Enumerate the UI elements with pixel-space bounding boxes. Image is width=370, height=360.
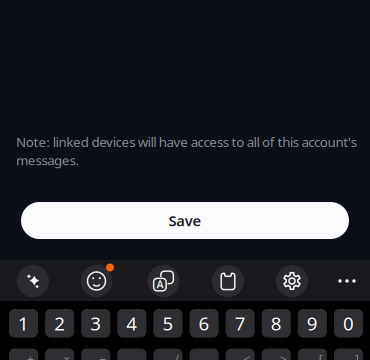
staticText: A xyxy=(156,277,163,291)
staticText: 8 xyxy=(271,311,282,336)
staticText: 7 xyxy=(235,311,246,336)
button[interactable]: Translate xyxy=(143,260,184,301)
staticText: 1 xyxy=(18,311,29,336)
button[interactable]: Save xyxy=(21,202,349,239)
staticText: [ xyxy=(319,351,323,360)
button[interactable]: Settings xyxy=(271,260,312,301)
staticText: ÷ xyxy=(99,351,106,360)
staticText: × xyxy=(63,351,70,360)
staticText: < xyxy=(244,351,251,360)
staticText: 9 xyxy=(307,311,318,336)
staticText: 0 xyxy=(343,311,354,336)
staticText: messages. xyxy=(16,151,79,169)
staticText: 5 xyxy=(162,311,173,336)
staticText: 3 xyxy=(90,311,101,336)
staticText: ] xyxy=(355,351,359,360)
button[interactable]: Paste xyxy=(207,260,248,301)
staticText: 2 xyxy=(54,311,65,336)
staticText: Note: linked devices will have access to… xyxy=(16,133,357,151)
staticText: + xyxy=(27,351,34,360)
button[interactable]: More xyxy=(326,260,367,301)
staticText: 6 xyxy=(199,311,210,336)
staticText: Save xyxy=(168,211,201,230)
staticText: / xyxy=(174,351,178,360)
staticText: > xyxy=(280,351,287,360)
button[interactable]: Writing Tools xyxy=(12,260,53,301)
button[interactable]: Emoji xyxy=(76,260,117,301)
staticText: 4 xyxy=(126,311,137,336)
